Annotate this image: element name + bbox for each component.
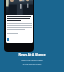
button[interactable]: Phone preview xyxy=(4,0,34,52)
staticText: News At A Glance xyxy=(18,53,46,57)
staticText: Read the latest news in the world today xyxy=(21,59,43,65)
